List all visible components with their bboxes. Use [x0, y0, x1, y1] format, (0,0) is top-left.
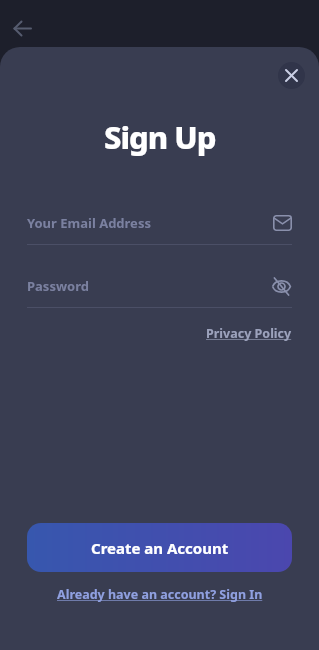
- button[interactable]: Create an Account: [27, 523, 292, 572]
- staticText: Password: [27, 277, 89, 295]
- staticText: Your Email Address: [27, 214, 151, 232]
- button[interactable]: Your Email Address: [27, 211, 292, 235]
- staticText: Sign Up: [104, 116, 216, 158]
- button[interactable]: Password: [27, 274, 292, 298]
- staticText: Already have an account? Sign In: [57, 586, 263, 603]
- button[interactable]: Privacy Policy: [206, 325, 292, 342]
- button[interactable]: Already have an account? Sign In: [57, 586, 263, 603]
- button[interactable]: [7, 13, 37, 43]
- staticText: Privacy Policy: [206, 325, 292, 342]
- staticText: Create an Account: [91, 538, 229, 558]
- button[interactable]: [278, 62, 305, 89]
